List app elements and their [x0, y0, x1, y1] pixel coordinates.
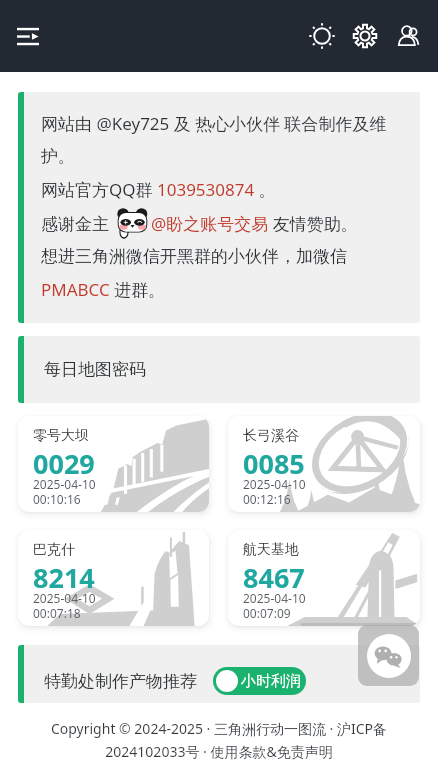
staticText: 00:10:16	[33, 491, 81, 507]
staticText: 长弓溪谷	[243, 427, 299, 445]
staticText: 8214	[33, 559, 95, 596]
staticText: 00:07:09	[243, 605, 291, 621]
staticText: 巴克什	[33, 541, 75, 559]
staticText: 零号大坝	[33, 427, 89, 445]
button[interactable]: Brightness	[301, 15, 343, 57]
staticText: 想进三角洲微信开黑群的小伙伴，加微信	[41, 246, 347, 267]
staticText: @盼之账号交易 友情赞助。	[151, 212, 358, 235]
button[interactable]: WeChat	[358, 625, 419, 686]
button[interactable]: Account	[387, 15, 429, 57]
button[interactable]: 网站由 @Key725 及 热心小伙伴 联合制作及维	[18, 92, 420, 323]
button[interactable]: 特勤处制作产物推荐	[18, 645, 420, 703]
staticText: 00:07:18	[33, 605, 81, 621]
staticText: 2025-04-10	[33, 476, 96, 492]
staticText: 0085	[243, 445, 305, 482]
button[interactable]: 航天基地	[228, 530, 420, 626]
button[interactable]: 巴克什	[18, 530, 209, 626]
staticText: 网站官方QQ群 1039530874 。	[41, 178, 276, 201]
staticText: 小时利润	[241, 672, 301, 691]
staticText: 2025-04-10	[33, 590, 96, 606]
staticText: 护。	[41, 146, 75, 167]
staticText: 2025-04-10	[243, 476, 306, 492]
staticText: 感谢金主	[41, 212, 114, 235]
staticText: 网站由 @Key725 及 热心小伙伴 联合制作及维	[41, 112, 387, 135]
staticText: 航天基地	[243, 541, 299, 559]
staticText: 8467	[243, 559, 305, 596]
staticText: 0029	[33, 445, 95, 482]
staticText: 2025-04-10	[243, 590, 306, 606]
staticText: 每日地图密码	[44, 359, 146, 380]
button[interactable]: 零号大坝	[18, 416, 209, 512]
button[interactable]: Menu	[6, 14, 50, 58]
button[interactable]: 长弓溪谷	[228, 416, 420, 512]
staticText: Copyright © 2024-2025 · 三角洲行动一图流 · 沪ICP备…	[46, 719, 392, 761]
button[interactable]: 小时利润	[216, 667, 301, 695]
button[interactable]: 每日地图密码	[18, 336, 420, 403]
staticText: 00:12:16	[243, 491, 291, 507]
button[interactable]: Settings	[344, 15, 386, 57]
staticText: 特勤处制作产物推荐	[44, 671, 197, 692]
staticText: PMABCC 进群。	[41, 278, 166, 301]
